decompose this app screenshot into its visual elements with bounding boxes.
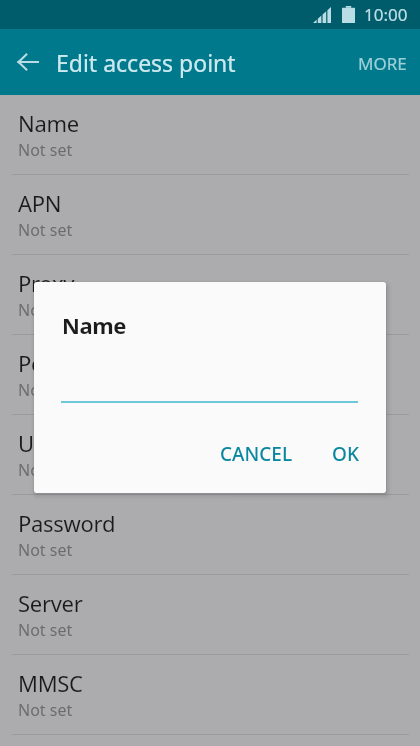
button[interactable]: Username <box>0 415 420 495</box>
button[interactable]: MMSC <box>0 655 420 735</box>
button[interactable]: OK <box>324 433 367 475</box>
button[interactable]: Proxy <box>0 255 420 335</box>
staticText: Edit access point <box>56 47 236 78</box>
staticText: APN <box>18 188 62 218</box>
staticText: Not set <box>18 619 73 641</box>
button[interactable]: Name <box>0 95 420 175</box>
staticText: CANCEL <box>220 441 293 467</box>
staticText: Not set <box>18 299 73 321</box>
staticText: Password <box>18 508 116 538</box>
staticText: Name <box>18 108 79 138</box>
staticText: Server <box>18 588 83 618</box>
button[interactable]: More options <box>343 34 420 91</box>
button[interactable]: Password <box>0 495 420 575</box>
staticText: MMSC <box>18 668 83 698</box>
staticText: MORE <box>358 52 407 75</box>
button[interactable]: Back <box>0 34 56 90</box>
staticText: OK <box>332 441 359 467</box>
staticText: Not set <box>18 459 73 481</box>
staticText: Name <box>62 310 127 340</box>
staticText: Not set <box>18 379 73 401</box>
button[interactable]: Server <box>0 575 420 655</box>
staticText: 10:00 <box>364 3 408 26</box>
staticText: Not set <box>18 219 73 241</box>
staticText: Not set <box>18 539 73 561</box>
staticText: Not set <box>18 139 73 161</box>
staticText: Port <box>18 348 61 378</box>
staticText: Not set <box>18 699 73 721</box>
staticText: Proxy <box>18 268 75 298</box>
button[interactable]: APN <box>0 175 420 255</box>
staticText: Username <box>18 428 123 458</box>
button[interactable]: CANCEL <box>212 433 301 475</box>
button[interactable]: Port <box>0 335 420 415</box>
